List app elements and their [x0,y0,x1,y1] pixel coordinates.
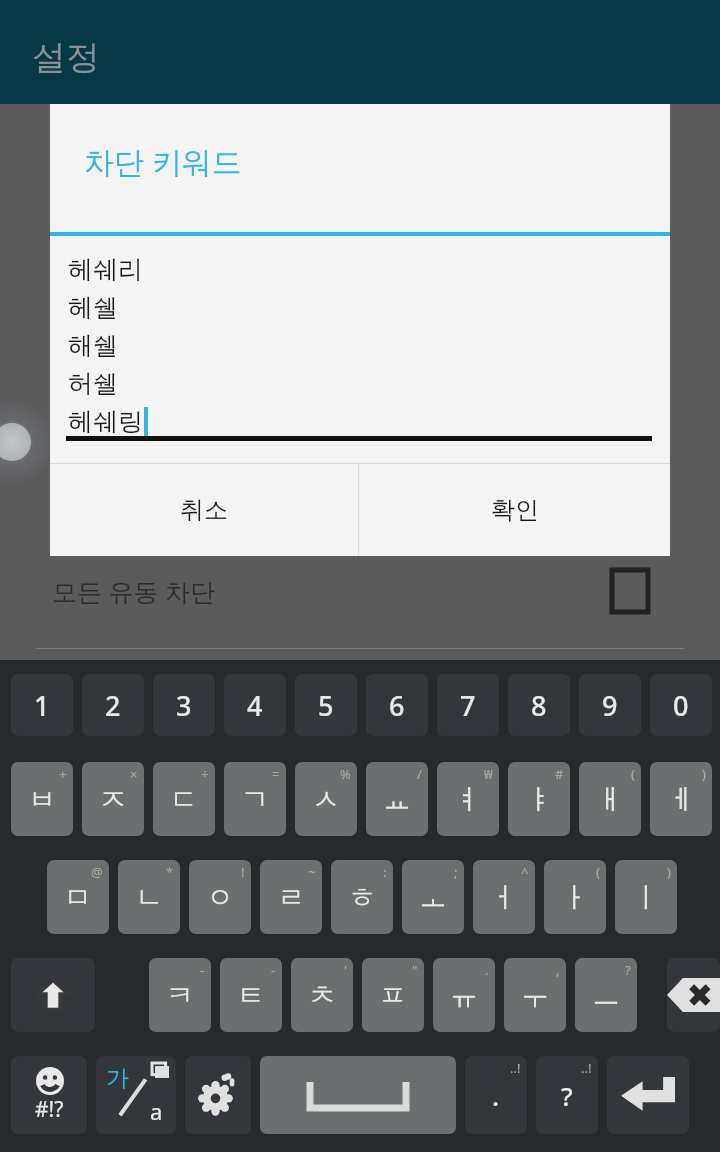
button[interactable]: ; [402,860,464,934]
button[interactable]: 설정 [185,1056,251,1134]
button[interactable]: - [220,958,282,1032]
button[interactable]: * [118,860,180,934]
staticText: 5 [318,687,334,724]
button[interactable]: Backspace [667,958,720,1032]
staticText: 차단 키워드 [84,141,242,182]
button[interactable]: 엔터 [607,1056,689,1134]
button[interactable]: ( [544,860,606,934]
button[interactable]: 모든 유동 차단 체크박스 [612,570,648,612]
staticText: 0 [673,687,689,724]
button[interactable]: 확인 [359,464,670,556]
button[interactable]: , [504,958,566,1032]
button[interactable]: 3 [153,674,215,736]
button[interactable]: ..! [465,1056,527,1134]
staticText: . [485,961,489,979]
staticText: ( [631,765,635,783]
staticText: ' [344,961,347,979]
button[interactable]: × [82,762,144,836]
staticText: ㅊ [308,978,336,1013]
button[interactable]: ! [189,860,251,934]
staticText: ㅎ [348,880,376,915]
staticText: " [412,961,418,979]
button[interactable]: ÷ [153,762,215,836]
staticText: ㄷ [170,782,198,817]
staticText: / [417,765,422,783]
button[interactable]: 5 [295,674,357,736]
staticText: ㅛ [383,782,411,817]
staticText: ㅔ [667,782,695,817]
staticText: 8 [531,687,547,724]
button[interactable]: 9 [579,674,641,736]
button[interactable]: 4 [224,674,286,736]
button[interactable]: . [433,958,495,1032]
staticText: ㅗ [419,880,447,915]
staticText: ? [561,1078,573,1113]
staticText: 허쉘 [68,368,118,399]
staticText: - [271,961,276,979]
staticText: ㅁ [64,880,92,915]
button[interactable]: 8 [508,674,570,736]
staticText: ㅠ [450,978,478,1013]
staticText: ; [454,863,458,881]
staticText: ㅌ [237,978,265,1013]
button[interactable]: ₩ [437,762,499,836]
staticText: . [492,1078,500,1113]
button[interactable]: : [331,860,393,934]
staticText: ..! [581,1059,592,1077]
button[interactable]: 스페이스 [260,1056,456,1134]
staticText: ? [625,961,631,979]
button[interactable]: ( [579,762,641,836]
staticText: #!? [35,1095,64,1124]
staticText: ㄹ [277,880,305,915]
button[interactable]: 7 [437,674,499,736]
staticText: ₩ [484,765,493,783]
staticText: ㅑ [525,782,553,817]
button[interactable]: " [362,958,424,1032]
staticText: 7 [460,687,476,724]
button[interactable]: ? [575,958,637,1032]
staticText: - [200,961,205,979]
staticText: ㅏ [561,880,589,915]
staticText: 3 [176,687,192,724]
button[interactable]: Shift [11,958,95,1032]
staticText: ㅓ [490,880,518,915]
staticText: ㄴ [135,880,163,915]
staticText: * [166,863,174,881]
staticText: 6 [389,687,405,724]
button[interactable]: 이모티콘 및 기호 [11,1056,87,1134]
button[interactable]: ) [650,762,712,836]
button[interactable]: 언어 전환 [96,1056,176,1134]
staticText: ( [596,863,600,881]
staticText: ㄱ [241,782,269,817]
button[interactable]: ..! [536,1056,598,1134]
button[interactable]: / [366,762,428,836]
button[interactable]: ' [291,958,353,1032]
staticText: , [556,961,560,979]
staticText: ! [241,863,245,881]
staticText: ÷ [201,765,209,783]
button[interactable]: 취소 [50,464,358,556]
staticText: ㅇ [206,880,234,915]
staticText: ㅂ [28,782,56,817]
button[interactable]: ~ [260,860,322,934]
button[interactable]: 2 [82,674,144,736]
staticText: ) [667,863,671,881]
button[interactable]: 1 [11,674,73,736]
staticText: ^ [521,863,529,881]
staticText: 해쉘 [68,330,118,361]
staticText: ㅋ [166,978,194,1013]
button[interactable]: ^ [473,860,535,934]
button[interactable]: ) [615,860,677,934]
button[interactable]: % [295,762,357,836]
button[interactable]: 6 [366,674,428,736]
button[interactable]: + [11,762,73,836]
staticText: × [130,765,138,783]
button[interactable]: 0 [650,674,712,736]
button[interactable]: = [224,762,286,836]
staticText: 확인 [491,495,539,525]
staticText: ..! [510,1059,521,1077]
button[interactable]: - [149,958,211,1032]
staticText: ㅈ [99,782,127,817]
button[interactable]: @ [47,860,109,934]
button[interactable]: # [508,762,570,836]
